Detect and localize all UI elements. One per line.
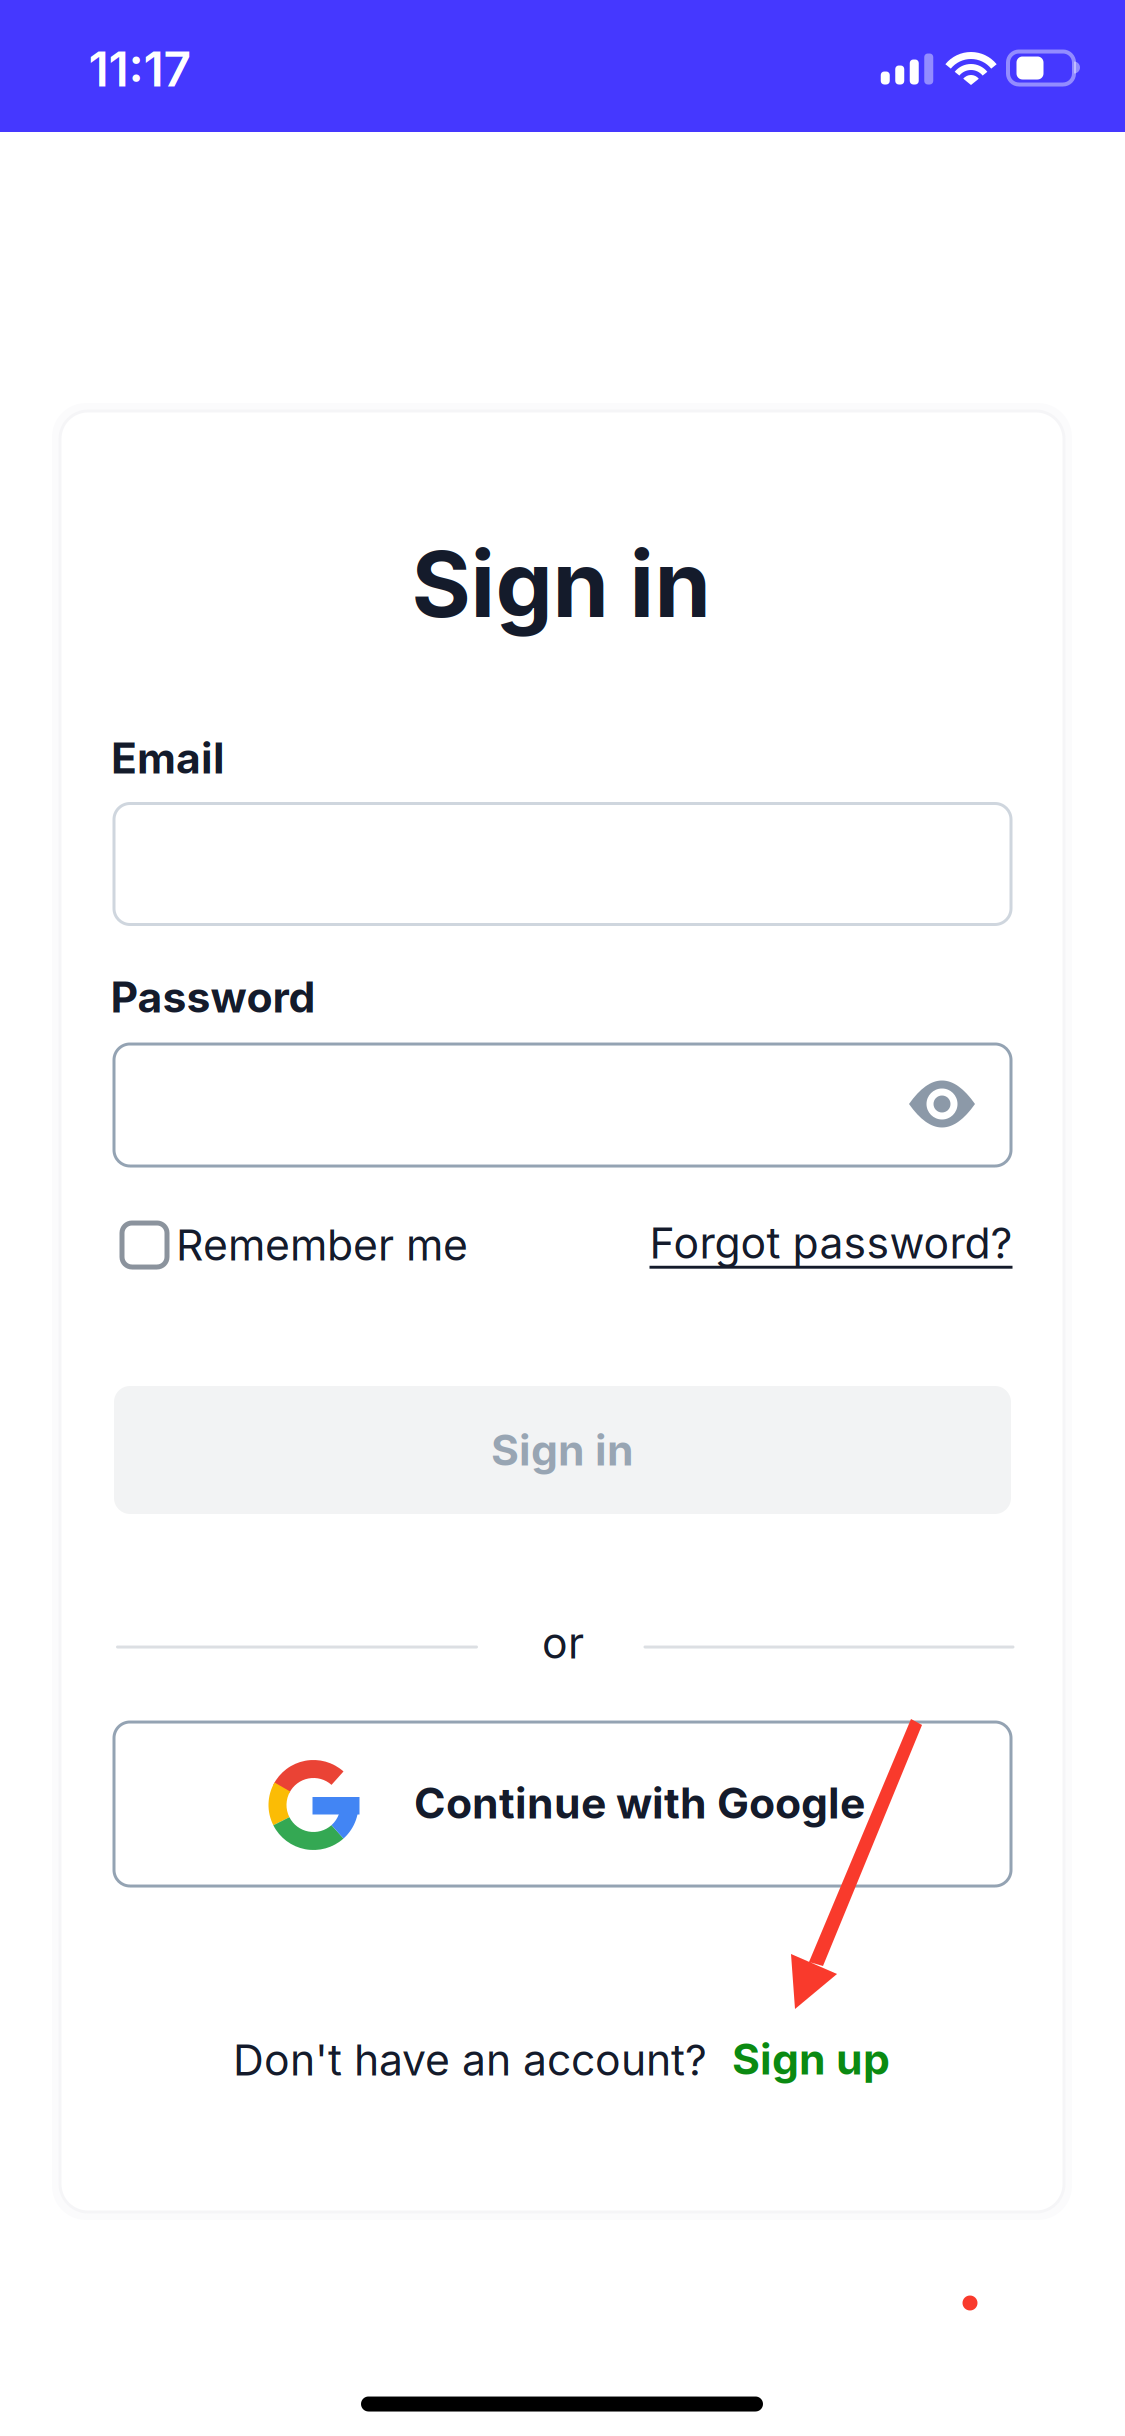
staticText: Remember me xyxy=(176,1219,468,1271)
staticText: 11:17 xyxy=(88,40,191,98)
staticText: Sign in xyxy=(411,529,710,639)
staticText: Sign in xyxy=(491,1424,634,1476)
button[interactable]: Password xyxy=(114,1044,1011,1166)
staticText: Password xyxy=(110,971,315,1023)
button[interactable]: Show password xyxy=(883,1043,1001,1165)
button[interactable]: Sign in xyxy=(114,1386,1011,1514)
staticText: Forgot password? xyxy=(649,1217,1012,1269)
staticText: Continue with Google xyxy=(414,1777,865,1829)
button[interactable]: Sign up xyxy=(732,2028,890,2090)
staticText: Don't have an account? xyxy=(233,2034,707,2086)
staticText: Email xyxy=(111,732,225,784)
button[interactable]: Email xyxy=(114,803,1011,924)
button[interactable]: Remember me xyxy=(122,1214,468,1276)
staticText: Sign up xyxy=(732,2033,890,2085)
button[interactable]: Continue with Google xyxy=(114,1722,1011,1886)
staticText: or xyxy=(542,1617,584,1669)
button[interactable]: Forgot password? xyxy=(649,1212,1012,1274)
